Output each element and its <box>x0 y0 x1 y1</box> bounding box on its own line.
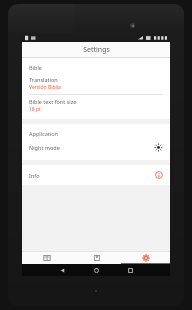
button[interactable]: Bookmarks <box>72 251 121 264</box>
staticText: Settings <box>83 45 110 55</box>
other: Info <box>155 171 163 179</box>
button[interactable]: Read <box>22 251 72 264</box>
staticText: Bible <box>29 64 42 71</box>
button[interactable]: Recents <box>113 264 147 276</box>
staticText: Night mode <box>29 144 60 151</box>
staticText: 18 pt <box>29 106 41 113</box>
staticText: Bible text font size <box>29 98 77 105</box>
button[interactable]: Back <box>45 264 79 276</box>
button[interactable]: Settings <box>121 251 170 264</box>
button[interactable]: Home <box>79 264 113 276</box>
button[interactable]: Bible text font size <box>22 95 170 116</box>
staticText: Info <box>29 172 40 179</box>
staticText: Application <box>29 130 58 137</box>
staticText: Versión Biblia <box>29 84 61 91</box>
button[interactable]: Info <box>22 165 170 185</box>
button[interactable]: Translation <box>22 73 170 94</box>
other: Toggle night mode <box>154 143 163 152</box>
staticText: Translation <box>29 76 58 83</box>
button[interactable]: Night mode <box>22 139 170 156</box>
